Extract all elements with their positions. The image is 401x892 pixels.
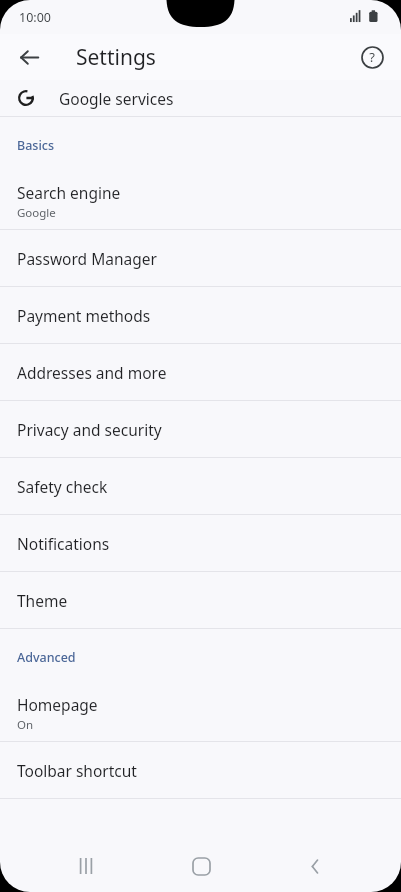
button[interactable]: Privacy and security [0, 401, 401, 457]
staticText: Safety check [17, 476, 108, 497]
staticText: Password Manager [17, 248, 157, 269]
staticText: Basics [17, 137, 54, 154]
button[interactable]: Google services [0, 80, 401, 116]
button[interactable]: Theme [0, 572, 401, 628]
button[interactable]: Safety check [0, 458, 401, 514]
button[interactable]: Home [173, 840, 229, 892]
staticText: ? [369, 48, 375, 66]
staticText: Google services [59, 88, 174, 109]
button[interactable]: Back [9, 37, 49, 77]
button[interactable]: Search engine [0, 173, 401, 229]
staticText: Homepage [17, 694, 98, 715]
button[interactable]: Toolbar shortcut [0, 742, 401, 798]
staticText: Addresses and more [17, 362, 167, 383]
button[interactable]: Back [287, 840, 343, 892]
button[interactable]: Recents [58, 840, 114, 892]
staticText: Payment methods [17, 305, 151, 326]
staticText: Theme [17, 590, 68, 611]
button[interactable]: Help [352, 37, 392, 77]
staticText: On [17, 717, 34, 733]
button[interactable]: Payment methods [0, 287, 401, 343]
button[interactable]: Password Manager [0, 230, 401, 286]
staticText: Search engine [17, 182, 121, 203]
staticText: Toolbar shortcut [17, 760, 137, 781]
staticText: Privacy and security [17, 419, 162, 440]
staticText: 10:00 [19, 9, 51, 26]
button[interactable]: Homepage [0, 685, 401, 741]
staticText: Google [17, 205, 56, 221]
button[interactable]: Notifications [0, 515, 401, 571]
button[interactable]: Addresses and more [0, 344, 401, 400]
staticText: Advanced [17, 649, 76, 666]
staticText: Settings [76, 43, 156, 72]
staticText: Notifications [17, 533, 110, 554]
